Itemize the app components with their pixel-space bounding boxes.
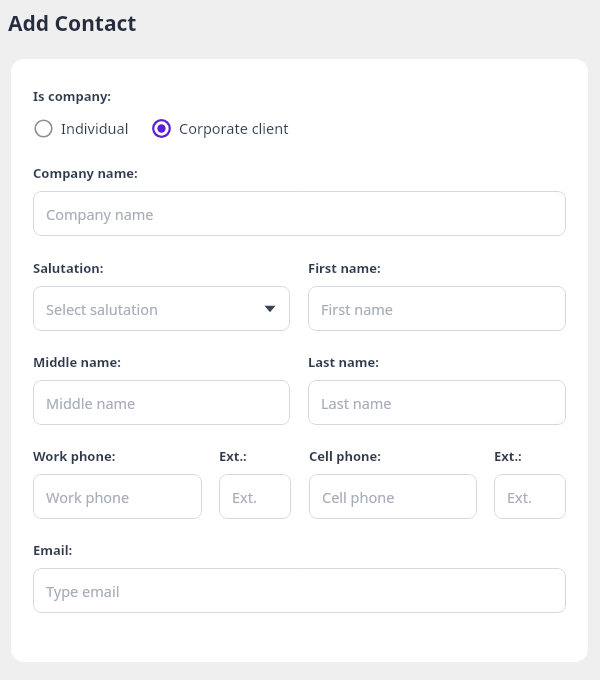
staticText: Work phone: [46, 487, 130, 507]
staticText: Cell phone:: [309, 447, 381, 465]
button[interactable]: Cell phone: [309, 474, 477, 519]
staticText: Ext.:: [494, 447, 522, 465]
button[interactable]: Last name: [308, 380, 566, 425]
button[interactable]: Select salutation: [33, 286, 290, 331]
button[interactable]: Ext.: [494, 474, 566, 519]
staticText: Individual: [61, 118, 129, 138]
button[interactable]: Type email: [33, 568, 566, 613]
staticText: Company name:: [33, 164, 138, 182]
staticText: Add Contact: [8, 9, 137, 38]
staticText: Middle name: [46, 393, 136, 413]
staticText: Ext.:: [219, 447, 247, 465]
staticText: Salutation:: [33, 259, 104, 277]
staticText: Company name: [46, 204, 154, 224]
staticText: Select salutation: [46, 299, 158, 319]
button[interactable]: Ext.: [219, 474, 291, 519]
button[interactable]: Corporate client: [151, 116, 290, 140]
staticText: Cell phone: [322, 487, 395, 507]
button[interactable]: Individual: [33, 116, 130, 140]
staticText: First name: [321, 299, 394, 319]
staticText: Last name: [321, 393, 392, 413]
button[interactable]: First name: [308, 286, 566, 331]
staticText: Ext.: [232, 487, 257, 507]
staticText: Corporate client: [179, 118, 289, 138]
staticText: Ext.: [507, 487, 532, 507]
staticText: Type email: [46, 581, 120, 601]
staticText: Is company:: [33, 87, 112, 105]
button[interactable]: Company name: [33, 191, 566, 236]
button[interactable]: Middle name: [33, 380, 290, 425]
staticText: Last name:: [308, 353, 379, 371]
staticText: Middle name:: [33, 353, 121, 371]
staticText: Email:: [33, 541, 73, 559]
staticText: Work phone:: [33, 447, 116, 465]
staticText: First name:: [308, 259, 381, 277]
button[interactable]: Work phone: [33, 474, 202, 519]
